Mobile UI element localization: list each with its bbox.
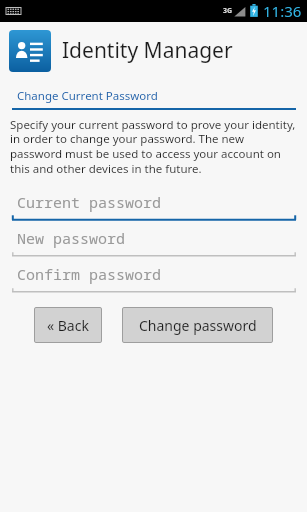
button[interactable]: Confirm password (0, 260, 307, 296)
staticText: Change Current Password (17, 88, 158, 104)
button[interactable]: New password (0, 224, 307, 260)
button[interactable]: « Back (34, 307, 102, 343)
staticText: 3G (223, 6, 233, 16)
button[interactable]: Current password (0, 188, 307, 224)
staticText: Change password (139, 316, 257, 335)
staticText: New password (17, 228, 126, 248)
staticText: Specify your current password to prove y… (10, 117, 299, 177)
other: App icon (9, 30, 51, 72)
staticText: Current password (17, 192, 162, 212)
staticText: « Back (47, 316, 89, 335)
staticText: Identity Manager (62, 36, 233, 65)
staticText: Confirm password (17, 264, 162, 284)
button[interactable]: Change password (122, 307, 273, 343)
staticText: 11:36 (263, 1, 302, 21)
